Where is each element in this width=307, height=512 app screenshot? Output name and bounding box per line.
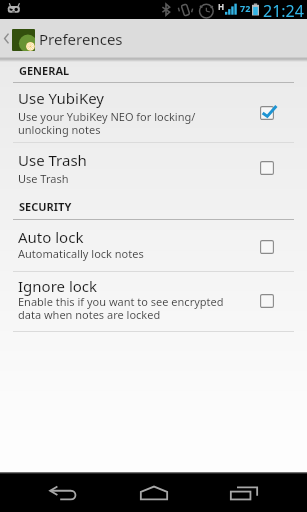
button[interactable]: Back bbox=[35, 474, 91, 512]
staticText: Use your YubiKey NEO for locking/ unlock… bbox=[18, 109, 196, 137]
staticText: Use Trash bbox=[18, 171, 69, 186]
button[interactable]: Toggle setting bbox=[256, 290, 278, 312]
button[interactable]: Recent apps bbox=[216, 474, 272, 512]
staticText: Ignore lock bbox=[18, 276, 98, 296]
staticText: 21:24 bbox=[263, 0, 304, 19]
staticText: Use YubiKey bbox=[18, 88, 105, 108]
staticText: H bbox=[218, 1, 225, 12]
button[interactable] bbox=[0, 270, 307, 316]
button[interactable] bbox=[0, 82, 307, 131]
button[interactable]: Home bbox=[126, 474, 182, 512]
button[interactable] bbox=[0, 221, 307, 268]
staticText: Enable this if you want to see encrypted… bbox=[18, 294, 224, 322]
staticText: Auto lock bbox=[18, 227, 84, 247]
button[interactable]: Toggle setting bbox=[256, 236, 278, 258]
staticText: GENERAL bbox=[19, 63, 70, 78]
button[interactable]: Navigate up bbox=[0, 19, 12, 57]
staticText: Automatically lock notes bbox=[18, 246, 144, 261]
button[interactable]: Toggle setting bbox=[256, 157, 278, 179]
button[interactable] bbox=[0, 144, 307, 193]
button[interactable]: Toggle setting bbox=[256, 102, 278, 124]
staticText: SECURITY bbox=[19, 199, 72, 214]
staticText: Use Trash bbox=[18, 150, 87, 170]
staticText: 72 bbox=[240, 2, 251, 14]
staticText: Preferences bbox=[39, 29, 123, 49]
